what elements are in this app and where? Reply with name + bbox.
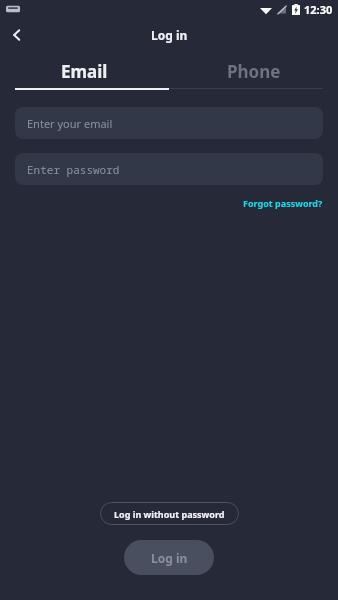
- button[interactable]: Back: [0, 18, 34, 52]
- staticText: Email: [61, 60, 108, 83]
- staticText: Log in: [151, 27, 188, 43]
- button[interactable]: Log in without password: [100, 502, 239, 525]
- staticText: Phone: [227, 60, 281, 83]
- staticText: Forgot password?: [243, 197, 323, 209]
- button[interactable]: Email: [0, 52, 169, 90]
- button[interactable]: Enter your email: [15, 107, 323, 139]
- button[interactable]: Log in: [124, 540, 214, 575]
- staticText: Log in without password: [114, 508, 225, 520]
- staticText: Enter password: [27, 162, 120, 177]
- staticText: Log in: [151, 550, 188, 566]
- staticText: Enter your email: [27, 116, 113, 131]
- button[interactable]: Enter password: [15, 153, 323, 185]
- button[interactable]: Forgot password?: [243, 194, 323, 212]
- staticText: 12:30: [304, 2, 333, 17]
- button[interactable]: Phone: [169, 52, 338, 90]
